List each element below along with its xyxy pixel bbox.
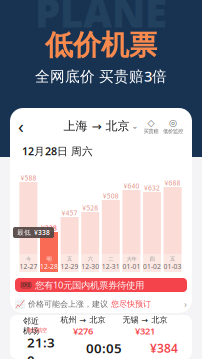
staticText: 最低 — [17, 228, 31, 237]
staticText: 大年 — [126, 256, 136, 262]
button[interactable]: ¥688 — [164, 172, 182, 272]
staticText: 四 — [149, 256, 154, 262]
staticText: 无锡 → 北京 — [122, 315, 167, 325]
button[interactable]: ◇ — [142, 117, 160, 134]
staticText: 01-02 — [143, 262, 161, 271]
staticText: 二 — [108, 256, 113, 262]
staticText: 12-29 — [61, 262, 79, 271]
button[interactable]: ◎ — [163, 117, 183, 134]
staticText: 21:30 — [27, 334, 55, 359]
staticText: 12月28日 周六 — [22, 144, 93, 158]
staticText: 低价机票 — [45, 28, 157, 62]
staticText: ¥632 — [144, 184, 160, 192]
staticText: 上海 → 北京 — [63, 119, 129, 133]
staticText: 📈 — [15, 299, 25, 308]
staticText: 12-30 — [81, 262, 99, 271]
staticText: › — [184, 298, 187, 310]
staticText: 五 — [170, 256, 175, 262]
staticText: 00:05 — [86, 339, 122, 357]
button[interactable]: 南方航空 — [10, 337, 192, 359]
staticText: 12-27 — [19, 262, 37, 271]
staticText: 全网底价 买贵赔3倍 — [35, 66, 167, 86]
staticText: 买贵赔 — [143, 128, 158, 135]
staticText: 五 — [67, 256, 72, 262]
staticText: ¥321 — [135, 325, 155, 337]
staticText: ¥640 — [123, 182, 139, 190]
button[interactable]: ¥528 — [81, 172, 99, 272]
staticText: ◇ — [147, 117, 154, 128]
staticText: ‹ — [18, 114, 24, 138]
staticText: 今 — [26, 256, 31, 262]
staticText: 🎟 — [20, 280, 32, 290]
staticText: 价格可能会上涨，建议 — [28, 299, 108, 309]
staticText: ¥508 — [103, 192, 119, 200]
button[interactable]: ¥640 — [122, 172, 140, 272]
staticText: 您有10元国内机票券待使用 — [35, 279, 144, 291]
staticText: ¥384 — [150, 340, 178, 356]
staticText: 邻近 — [23, 316, 39, 326]
button[interactable]: ¥508 — [102, 172, 120, 272]
staticText: 01-01 — [122, 262, 140, 271]
button[interactable]: 🎟 — [15, 278, 187, 292]
button[interactable]: ¥338 — [40, 172, 58, 272]
staticText: ¥338 — [34, 228, 50, 237]
button[interactable]: Back — [10, 113, 32, 139]
staticText: 您尽快预订 — [111, 299, 151, 309]
staticText: ¥588 — [20, 174, 36, 182]
button[interactable]: 杭州 → 北京 — [52, 315, 114, 337]
staticText: ¥338 — [41, 224, 57, 232]
button[interactable]: 📈 — [15, 298, 187, 310]
staticText: ⌄ — [131, 121, 138, 131]
staticText: 01-03 — [164, 262, 182, 271]
staticText: ◎ — [169, 117, 177, 128]
staticText: 12-28 — [40, 262, 58, 271]
staticText: 低价监控 — [163, 128, 183, 135]
staticText: ¥688 — [165, 179, 181, 187]
staticText: PLANE — [35, 0, 167, 38]
staticText: 12-31 — [102, 262, 120, 271]
staticText: 南方航空 — [27, 327, 47, 334]
button[interactable]: 无锡 → 北京 — [114, 315, 176, 337]
button[interactable]: ¥632 — [143, 172, 161, 272]
staticText: ¥276 — [73, 325, 93, 337]
button[interactable]: 上海 → 北京 — [63, 119, 138, 133]
staticText: 明 — [46, 256, 51, 262]
button[interactable]: ¥457 — [61, 172, 79, 272]
staticText: 杭州 → 北京 — [60, 315, 105, 325]
staticText: 六 — [88, 256, 93, 262]
button[interactable]: ¥588 — [19, 172, 37, 272]
staticText: 机场 — [23, 326, 39, 336]
staticText: ¥528 — [82, 204, 98, 212]
staticText: ¥457 — [62, 209, 78, 217]
